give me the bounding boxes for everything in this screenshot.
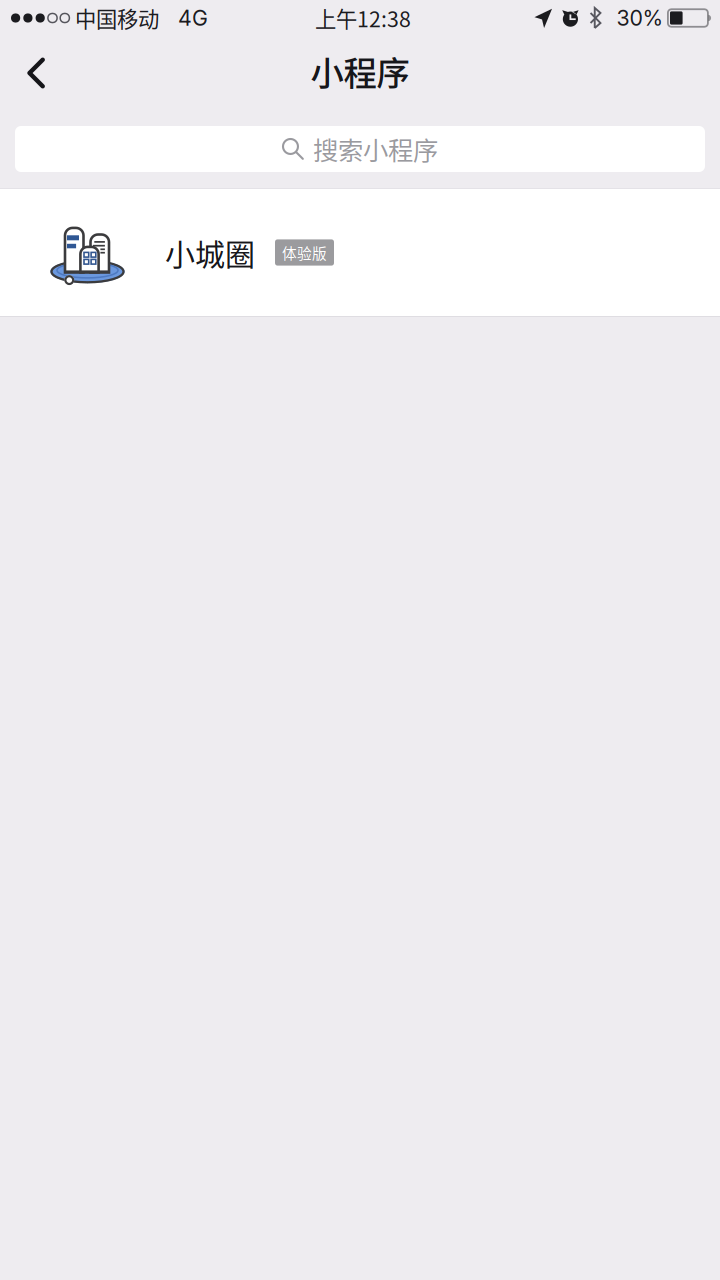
- staticText: 中国移动: [75, 3, 159, 33]
- button[interactable]: 小城圈: [0, 188, 720, 317]
- staticText: 30%: [616, 5, 663, 31]
- staticText: 体验版: [282, 242, 327, 263]
- button[interactable]: Back: [0, 44, 73, 102]
- staticText: 搜索小程序: [313, 131, 438, 167]
- staticText: 小城圈: [165, 231, 255, 274]
- button[interactable]: 搜索小程序: [15, 126, 705, 172]
- staticText: 小程序: [310, 47, 409, 95]
- staticText: 4G: [178, 5, 208, 31]
- staticText: 上午12:38: [315, 3, 411, 33]
